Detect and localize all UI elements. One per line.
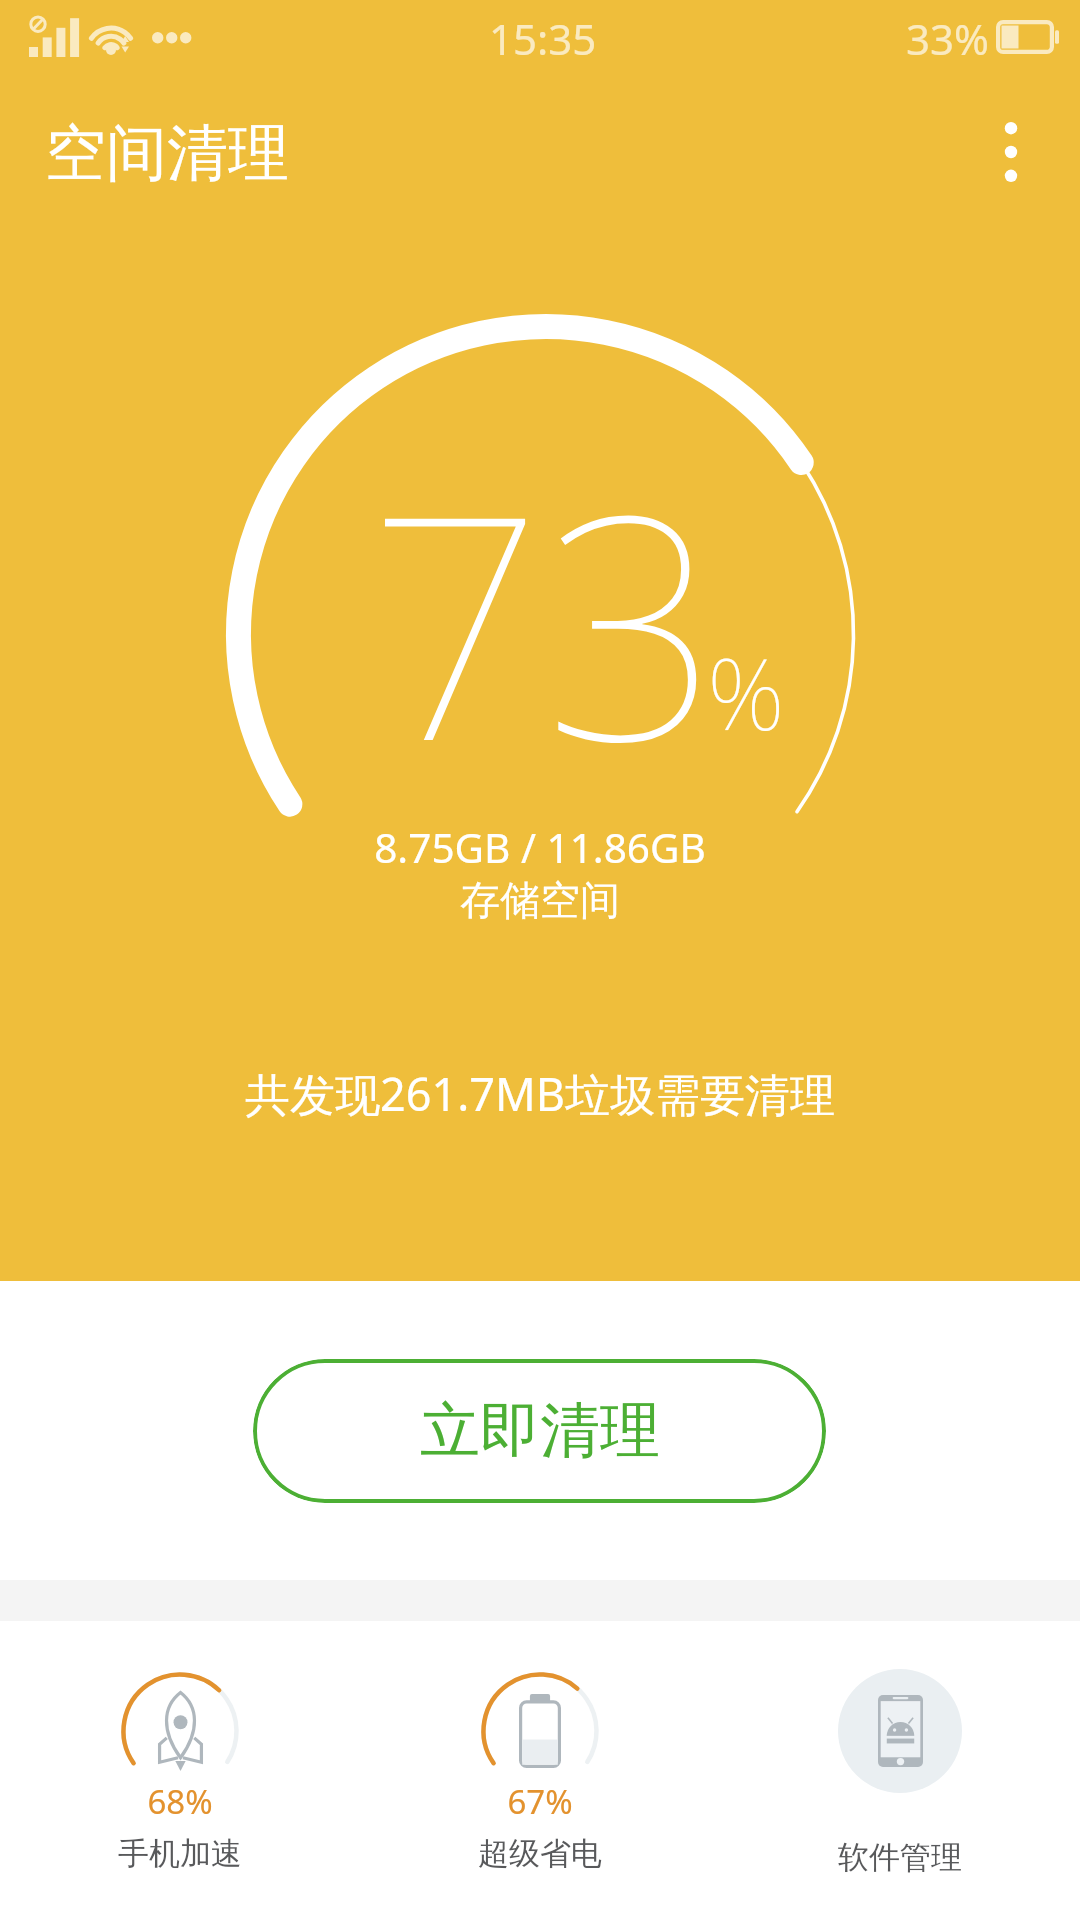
button[interactable]: 立即清理 [253, 1359, 826, 1503]
staticText: 8.75GB / 11.86GB [0, 820, 1080, 875]
staticText: 软件管理 [750, 1838, 1050, 1877]
staticText: 手机加速 [30, 1834, 330, 1873]
staticText: 共发现261.7MB垃圾需要清理 [0, 1063, 1080, 1124]
staticText: 33% [906, 10, 989, 67]
staticText: 73 [367, 409, 721, 831]
button[interactable]: More options [951, 92, 1071, 212]
button[interactable]: 68% [30, 1655, 330, 1905]
staticText: 空间清理 [45, 115, 289, 192]
staticText: 立即清理 [420, 1393, 660, 1469]
staticText: 67% [390, 1779, 690, 1824]
button[interactable]: 67% [390, 1655, 690, 1905]
staticText: 15:35 [489, 10, 597, 67]
staticText: 超级省电 [390, 1834, 690, 1873]
button[interactable]: 软件管理 [750, 1655, 1050, 1905]
staticText: 68% [30, 1779, 330, 1824]
staticText: % [707, 625, 785, 758]
staticText: 存储空间 [0, 875, 1080, 925]
